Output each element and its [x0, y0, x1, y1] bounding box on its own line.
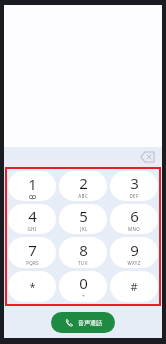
button[interactable]: 8 [59, 237, 107, 268]
button[interactable]: 2 [59, 171, 107, 201]
button[interactable]: 4 [8, 204, 56, 234]
staticText: MNO [128, 226, 140, 232]
staticText: ABC [78, 193, 88, 199]
staticText: 音声通話 [78, 319, 102, 327]
button[interactable]: 7 [8, 237, 56, 268]
button[interactable]: 6 [110, 204, 158, 234]
staticText: DEF [129, 193, 139, 199]
staticText: + [82, 293, 85, 300]
staticText: WXYZ [127, 260, 141, 266]
staticText: 8 [79, 240, 88, 260]
staticText: 0 [79, 273, 88, 293]
button[interactable]: 音声通話 [51, 312, 115, 333]
staticText: TUV [78, 260, 88, 266]
button[interactable]: 1 [8, 171, 56, 201]
staticText: JKL [80, 226, 88, 232]
button[interactable]: * [8, 271, 56, 302]
button[interactable]: # [110, 271, 158, 302]
staticText: 1 [28, 174, 37, 194]
staticText: 2 [79, 173, 88, 193]
button[interactable]: 5 [59, 204, 107, 234]
button[interactable]: Backspace [139, 149, 155, 165]
staticText: # [130, 279, 138, 294]
button[interactable]: 3 [110, 171, 158, 201]
button[interactable]: 9 [110, 237, 158, 268]
staticText: 9 [130, 240, 139, 260]
staticText: 7 [28, 240, 37, 260]
staticText: 4 [28, 206, 37, 226]
staticText: 3 [130, 173, 139, 193]
staticText: PQRS [26, 260, 39, 266]
staticText: GHI [27, 226, 37, 232]
staticText: 6 [130, 206, 139, 226]
button[interactable]: 0 [59, 271, 107, 302]
staticText: 5 [79, 206, 88, 226]
staticText: * [29, 279, 36, 294]
